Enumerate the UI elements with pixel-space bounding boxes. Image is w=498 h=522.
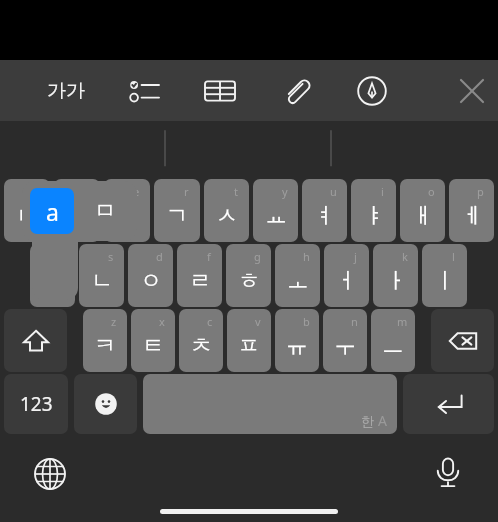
staticText: ㅑ	[363, 202, 385, 230]
button[interactable]: Table	[198, 69, 242, 113]
staticText: ㅛ	[265, 202, 287, 230]
button[interactable]: Checklist	[122, 69, 166, 113]
button[interactable]: Attach	[274, 69, 318, 113]
staticText: ㅗ	[287, 267, 309, 295]
staticText: x	[159, 314, 165, 329]
button[interactable]: Close	[446, 65, 498, 117]
staticText: z	[111, 314, 117, 329]
staticText: ㅔ	[461, 202, 483, 230]
staticText: v	[255, 314, 261, 329]
staticText: ㅋ	[94, 332, 116, 360]
button[interactable]: g	[226, 244, 271, 307]
button[interactable]: v	[227, 309, 271, 372]
button[interactable]: o	[400, 179, 445, 242]
staticText: ㅏ	[385, 267, 407, 295]
button[interactable]: Dictation	[424, 448, 472, 496]
button[interactable]: 한	[143, 374, 397, 434]
button[interactable]: Emoji	[74, 374, 137, 434]
button[interactable]: s	[79, 244, 124, 307]
button[interactable]: b	[275, 309, 319, 372]
staticText: d	[156, 249, 163, 264]
button[interactable]: k	[373, 244, 418, 307]
button[interactable]: 가가	[38, 67, 94, 115]
staticText: h	[303, 249, 310, 264]
staticText: i	[381, 184, 384, 199]
button[interactable]: Shift	[4, 309, 67, 372]
button[interactable]: u	[302, 179, 347, 242]
staticText: ㅁ	[94, 197, 116, 225]
staticText: 가가	[47, 79, 85, 103]
button[interactable]: c	[179, 309, 223, 372]
button[interactable]: a	[22, 181, 137, 241]
staticText: m	[397, 314, 408, 329]
staticText: ㅡ	[382, 332, 404, 360]
button[interactable]: Backspace	[431, 309, 494, 372]
staticText: l	[452, 249, 455, 264]
staticText: y	[282, 184, 288, 199]
staticText: s	[108, 249, 114, 264]
button[interactable]: z	[83, 309, 127, 372]
button[interactable]: p	[449, 179, 494, 242]
staticText: ㄱ	[166, 202, 188, 230]
staticText: r	[184, 184, 189, 199]
button[interactable]: r	[154, 179, 200, 242]
staticText: ㅓ	[336, 267, 358, 295]
button[interactable]: l	[422, 244, 467, 307]
staticText: ㅣ	[434, 267, 456, 295]
button[interactable]: e	[104, 179, 150, 242]
staticText: ㅠ	[286, 332, 308, 360]
button[interactable]: j	[324, 244, 369, 307]
staticText: ㅌ	[142, 332, 164, 360]
staticText: a	[46, 196, 59, 227]
button[interactable]: q	[4, 179, 50, 242]
button[interactable]: t	[204, 179, 249, 242]
button[interactable]: Change keyboard	[26, 450, 74, 498]
staticText: ㅕ	[314, 202, 336, 230]
staticText: p	[477, 184, 484, 199]
button[interactable]: h	[275, 244, 320, 307]
button[interactable]: Return	[403, 374, 494, 434]
button[interactable]: f	[177, 244, 222, 307]
button[interactable]: x	[131, 309, 175, 372]
staticText: ㅎ	[238, 267, 260, 295]
staticText: b	[303, 314, 310, 329]
staticText: ㄴ	[91, 267, 113, 295]
staticText: A	[378, 411, 387, 430]
staticText: n	[351, 314, 358, 329]
staticText: ㅍ	[238, 332, 260, 360]
button[interactable]: i	[351, 179, 396, 242]
button[interactable]: m	[371, 309, 415, 372]
staticText: c	[207, 314, 213, 329]
button[interactable]: Markup	[350, 69, 394, 113]
button[interactable]: 123	[4, 374, 68, 434]
staticText: ㅂ	[16, 202, 38, 230]
staticText: 한	[361, 413, 374, 429]
staticText: ㅇ	[140, 267, 162, 295]
staticText: j	[354, 249, 357, 264]
staticText: ㅐ	[412, 202, 434, 230]
staticText: ㄹ	[189, 267, 211, 295]
staticText: ㅈ	[66, 202, 88, 230]
staticText: o	[428, 184, 435, 199]
staticText: u	[330, 184, 337, 199]
staticText: q	[33, 184, 40, 199]
staticText: 123	[20, 391, 53, 417]
button[interactable]: y	[253, 179, 298, 242]
button[interactable]: n	[323, 309, 367, 372]
staticText: ㅜ	[334, 332, 356, 360]
staticText: ㅊ	[190, 332, 212, 360]
staticText: f	[207, 249, 211, 264]
button[interactable]: d	[128, 244, 173, 307]
button[interactable]: a	[30, 244, 75, 307]
staticText: g	[254, 249, 261, 264]
staticText: t	[234, 184, 238, 199]
staticText: k	[402, 249, 408, 264]
staticText: ㅅ	[216, 202, 238, 230]
staticText: e	[133, 184, 140, 199]
button[interactable]: w	[54, 179, 100, 242]
